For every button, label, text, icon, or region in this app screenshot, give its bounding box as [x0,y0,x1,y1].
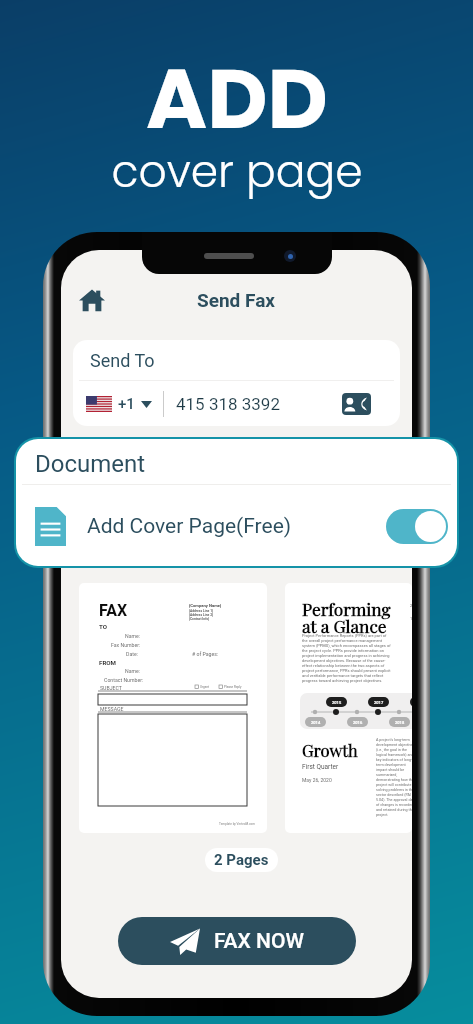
button[interactable]: 2 Pages [205,848,278,872]
staticText: Fax Number: [111,642,141,648]
staticText: Please Reply [224,685,242,689]
staticText: Name: [125,668,141,674]
button[interactable]: Home [75,283,109,317]
staticText: Document [35,450,146,478]
staticText: SUBJECT [100,685,122,691]
staticText: Contact Number: [104,677,144,683]
staticText: FAX NOW [214,929,304,954]
staticText: 2015 [332,700,342,705]
staticText: Template by VertexM.com [219,822,256,826]
button[interactable]: Pick from contacts [341,389,371,419]
staticText: Performing at a Glance [302,597,391,638]
staticText: [Company Name] [189,603,222,608]
staticText: 2014 [311,720,321,725]
button[interactable]: Toggle add cover page [386,509,448,544]
staticText: Urgent [200,685,210,689]
staticText: # of Pages: [192,651,219,657]
staticText: FROM [99,659,117,666]
staticText: Add Cover Page(Free) [87,514,292,539]
staticText: TO [99,623,108,630]
staticText: cover page [111,141,363,203]
staticText: MESSAGE [100,706,124,712]
staticText: 155 [410,616,412,621]
button[interactable]: Performing at a Glance [285,583,412,833]
staticText: 2017 [374,700,384,705]
button[interactable]: FAX [79,583,267,833]
staticText: Send To [90,350,155,371]
staticText: Project Performance Reports (PPRs) are p… [302,633,391,683]
staticText: Date: [126,651,138,657]
staticText: 2016 [353,720,363,725]
staticText: First Quarter [302,763,339,771]
button[interactable]: +1 [86,395,152,413]
staticText: May 26, 2020 [302,777,332,783]
button[interactable]: FAX NOW [118,917,356,965]
button[interactable]: Add Cover Page(Free) [35,486,448,566]
staticText: +1 [118,395,135,413]
staticText: ADD [146,41,328,157]
staticText: 2018 [395,720,405,725]
staticText: [Address Line 1] [Address Line 2] [Conta… [189,609,213,621]
staticText: A project's long-term development object… [376,738,412,817]
staticText: Send Fax [197,289,276,311]
staticText: 2 Pages [214,851,269,869]
staticText: FAX [99,601,128,620]
staticText: Growth [302,739,358,761]
staticText: 415 318 3392 [176,394,280,414]
staticText: 275 [410,603,412,608]
staticText: Name: [125,633,141,639]
